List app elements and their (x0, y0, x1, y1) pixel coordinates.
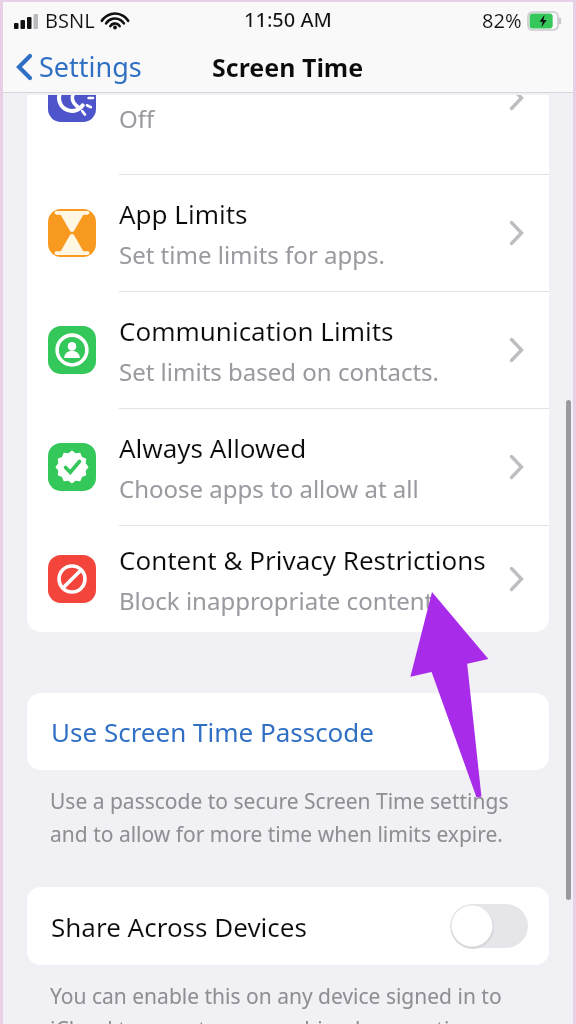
staticText: Content & Privacy Restrictions (119, 542, 486, 577)
button[interactable]: Communication Limits (27, 292, 549, 408)
staticText: Block inappropriate content. (119, 584, 440, 617)
staticText: Screen Time (212, 50, 364, 84)
staticText: Share Across Devices (51, 909, 307, 944)
staticText: Use a passcode to secure Screen Time set… (50, 787, 509, 816)
staticText: 11:50 AM (244, 6, 332, 33)
staticText: BSNL (45, 7, 95, 34)
button[interactable]: Share Across Devices (27, 887, 549, 965)
button[interactable]: Always Allowed (27, 409, 549, 525)
button[interactable]: Share Across Devices toggle (450, 904, 528, 948)
button[interactable]: App Limits (27, 175, 549, 291)
staticText: Choose apps to allow at all times. (119, 472, 489, 505)
staticText: Off (119, 102, 155, 135)
staticText: App Limits (119, 196, 248, 231)
staticText: Always Allowed (119, 430, 307, 465)
staticText: Communication Limits (119, 313, 394, 348)
button[interactable]: Use Screen Time Passcode (27, 693, 549, 770)
staticText: You can enable this on any device signed… (50, 982, 502, 1011)
staticText: iCloud to report your combined screen ti… (50, 1015, 487, 1024)
button[interactable]: Content & Privacy Restrictions (27, 526, 549, 632)
button[interactable]: Settings (10, 44, 148, 89)
staticText: Set time limits for apps. (119, 238, 385, 271)
staticText: Settings (39, 48, 142, 85)
staticText: Set limits based on contacts. (119, 355, 439, 388)
staticText: Use Screen Time Passcode (51, 714, 374, 749)
staticText: 82% (482, 7, 522, 34)
staticText: and to allow for more time when limits e… (50, 820, 503, 849)
